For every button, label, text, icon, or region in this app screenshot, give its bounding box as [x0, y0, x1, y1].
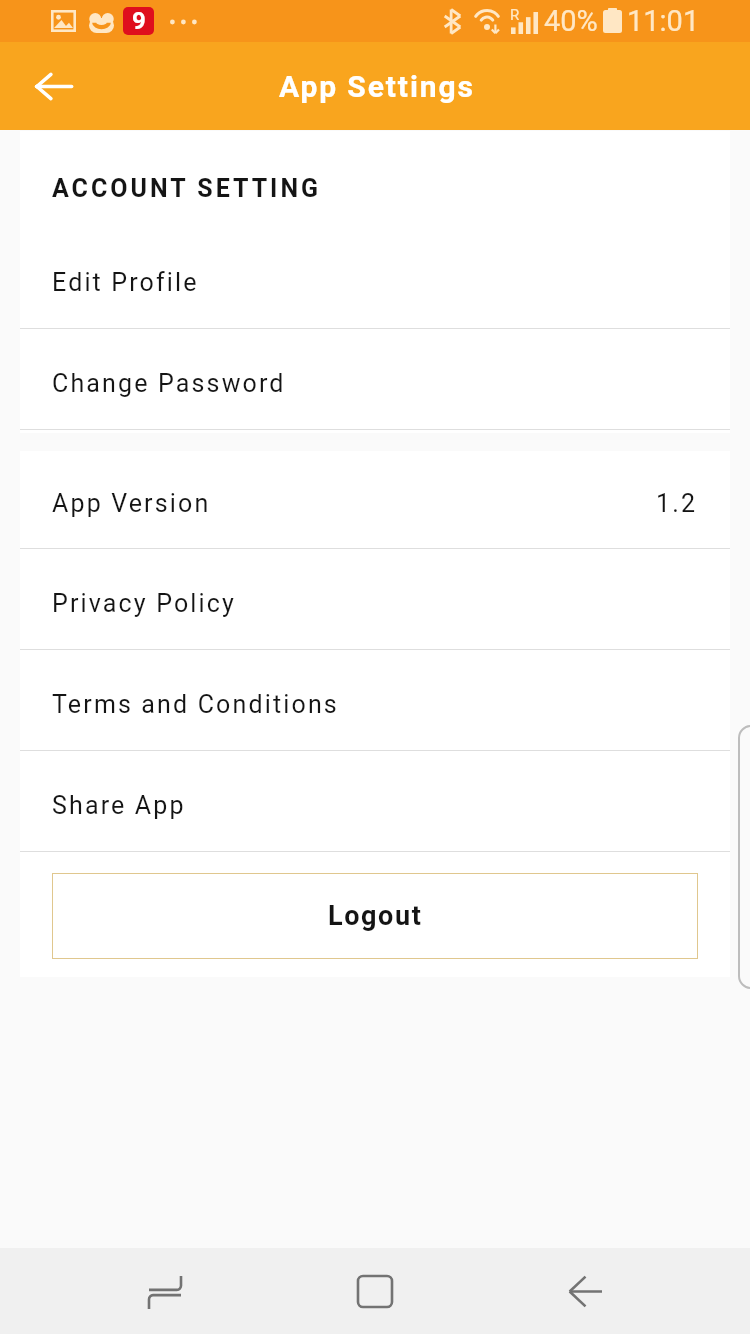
- staticText: 11:01: [627, 4, 700, 38]
- staticText: Change Password: [52, 369, 286, 398]
- staticText: App Settings: [279, 69, 475, 104]
- staticText: 40%: [544, 4, 598, 38]
- staticText: R: [510, 6, 520, 24]
- button[interactable]: Home: [315, 1248, 435, 1334]
- staticText: Logout: [328, 900, 423, 932]
- staticText: App Version: [52, 489, 211, 518]
- staticText: ACCOUNT SETTING: [52, 174, 322, 203]
- button[interactable]: App Version: [20, 451, 730, 548]
- staticText: 9: [132, 7, 146, 35]
- staticText: Privacy Policy: [52, 589, 237, 618]
- button[interactable]: Privacy Policy: [20, 549, 730, 649]
- button[interactable]: Recent apps: [105, 1248, 225, 1334]
- staticText: Share App: [52, 791, 186, 820]
- staticText: Edit Profile: [52, 268, 199, 297]
- button[interactable]: Share App: [20, 751, 730, 851]
- button[interactable]: Back: [0, 42, 88, 130]
- button[interactable]: Terms and Conditions: [20, 650, 730, 750]
- staticText: Terms and Conditions: [52, 690, 339, 719]
- button[interactable]: Edit Profile: [20, 228, 730, 328]
- button[interactable]: Change Password: [20, 329, 730, 429]
- staticText: 1.2: [656, 489, 698, 518]
- button[interactable]: Back: [525, 1248, 645, 1334]
- button[interactable]: Logout: [52, 873, 698, 959]
